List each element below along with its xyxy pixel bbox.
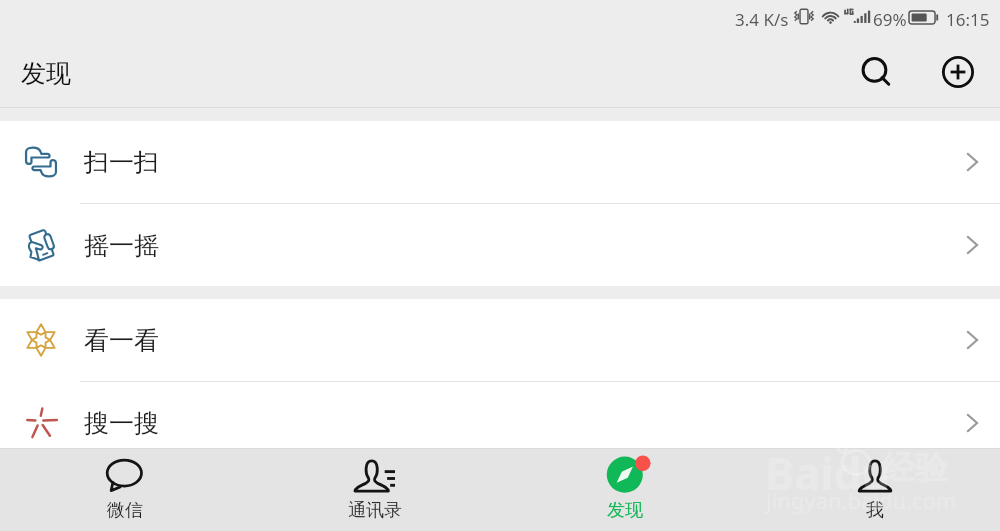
staticText: 看一看 [84,325,159,356]
staticText: 发现 [607,499,643,522]
button[interactable]: 搜一搜 [0,382,1000,448]
button[interactable]: Add [934,48,982,96]
staticText: 69% [873,8,907,31]
staticText: 经验 [882,447,948,489]
button[interactable]: 微信 [0,449,250,531]
staticText: 3.4 K/s [735,8,789,31]
staticText: 扫一扫 [84,147,159,178]
staticText: Baidu [765,443,891,503]
button[interactable]: 看一看 [0,299,1000,381]
button[interactable]: 发现 [500,449,750,531]
button[interactable]: 摇一摇 [0,204,1000,286]
button[interactable]: Search [852,49,900,97]
staticText: 我 [866,499,884,522]
staticText: 微信 [107,499,143,522]
staticText: 搜一搜 [84,408,159,439]
staticText: 16:15 [946,8,990,31]
button[interactable]: 我 [750,449,1000,531]
button[interactable]: 扫一扫 [0,121,1000,203]
staticText: jingyan.baidu.com [766,485,957,515]
staticText: 发现 [21,58,71,89]
staticText: 摇一摇 [84,230,159,261]
staticText: 通讯录 [348,499,402,522]
button[interactable]: 通讯录 [250,449,500,531]
